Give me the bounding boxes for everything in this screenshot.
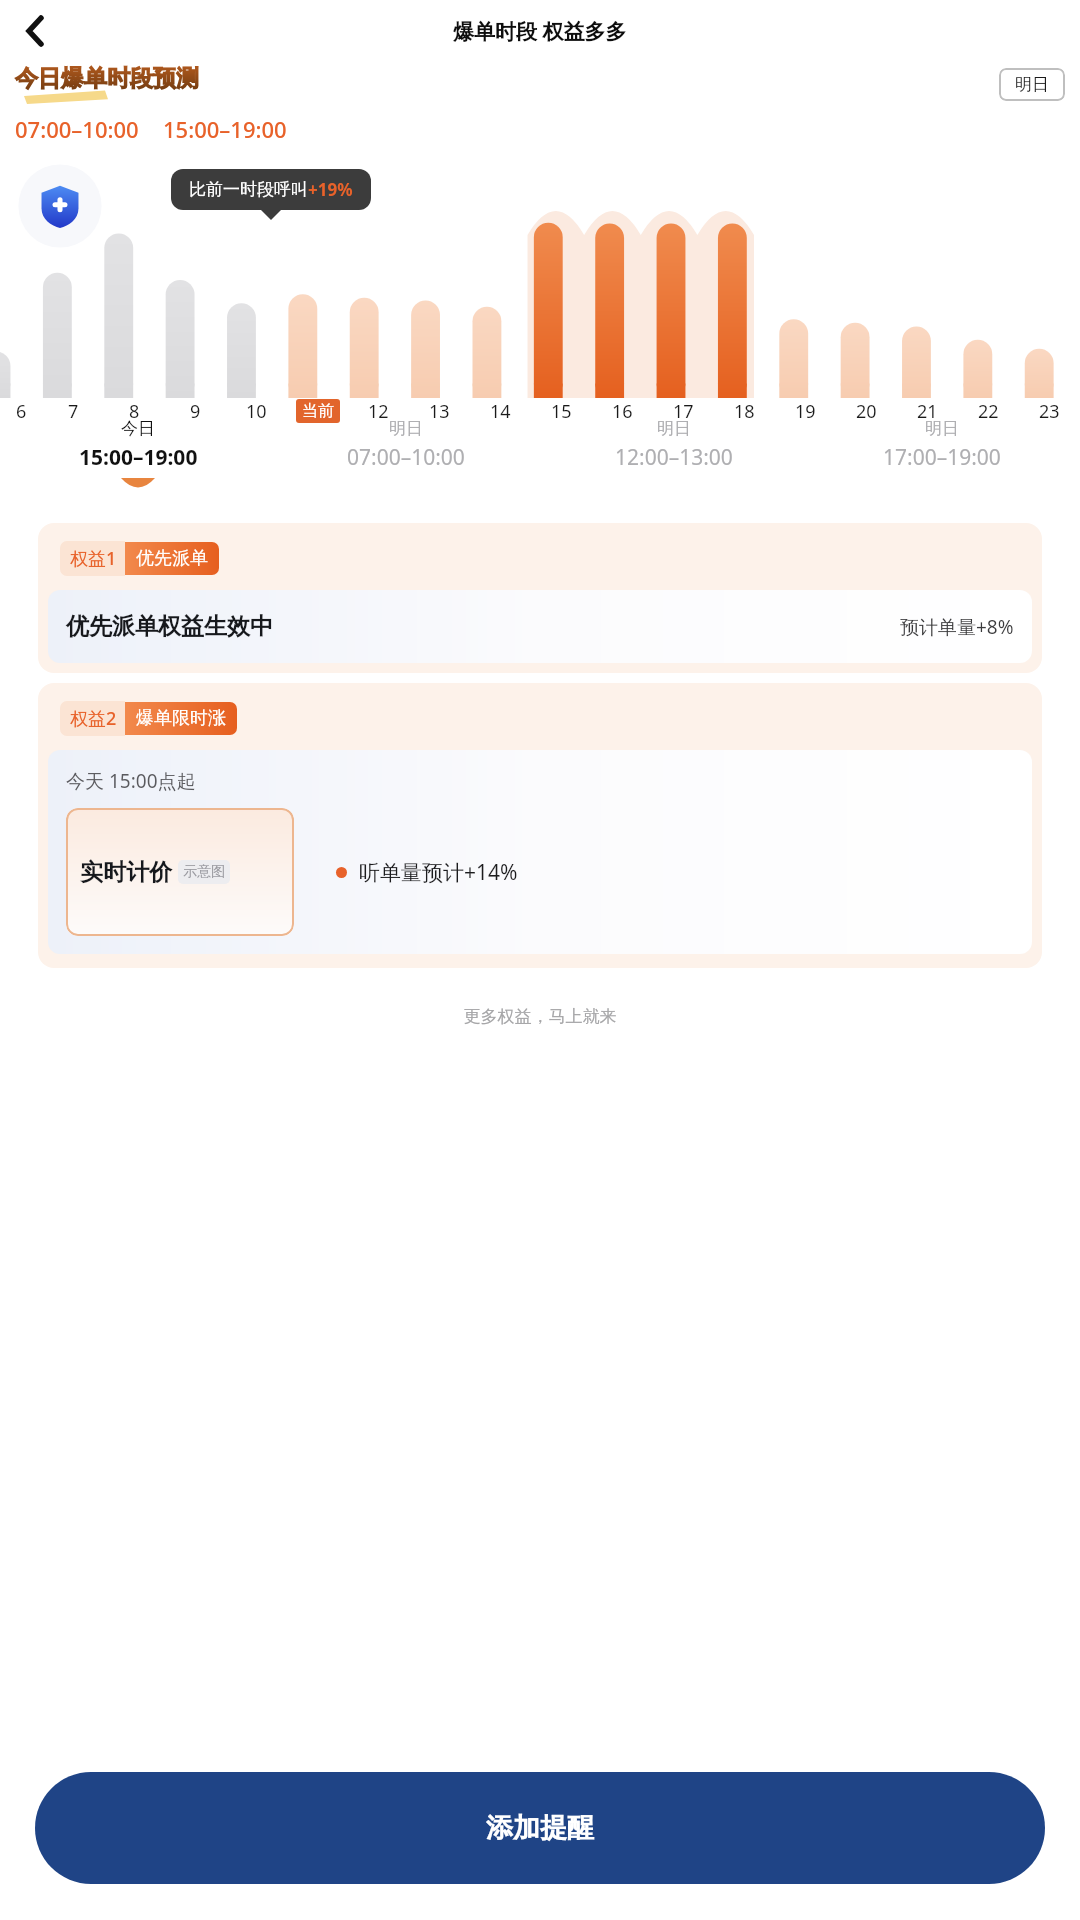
staticText: 权益1 bbox=[70, 546, 117, 571]
staticText: 爆单时段 权益多多 bbox=[453, 17, 627, 46]
staticText: 今天 15:00点起 bbox=[66, 768, 196, 794]
button[interactable]: 权益1 bbox=[38, 523, 1042, 673]
staticText: 15 bbox=[551, 399, 572, 424]
staticText: 17 bbox=[673, 399, 694, 424]
button[interactable]: 明日 bbox=[272, 412, 540, 493]
staticText: 15:00–19:00 bbox=[79, 443, 198, 472]
staticText: 示意图 bbox=[183, 863, 225, 881]
staticText: 22 bbox=[978, 399, 999, 424]
staticText: 17:00–19:00 bbox=[883, 443, 1001, 472]
staticText: 权益2 bbox=[70, 706, 117, 731]
staticText: 07:00–10:00 bbox=[347, 443, 465, 472]
button[interactable]: 明日 bbox=[999, 68, 1065, 101]
staticText: 明日 bbox=[389, 418, 423, 439]
staticText: 13 bbox=[429, 399, 450, 424]
staticText: 23 bbox=[1039, 399, 1060, 424]
staticText: 14 bbox=[490, 399, 511, 424]
staticText: 爆单限时涨 bbox=[136, 707, 226, 730]
staticText: 16 bbox=[612, 399, 633, 424]
staticText: 比前一时段呼叫 bbox=[189, 179, 308, 200]
staticText: 添加提醒 bbox=[486, 1811, 594, 1845]
staticText: 明日 bbox=[1015, 74, 1049, 95]
staticText: 18 bbox=[734, 399, 755, 424]
staticText: 9 bbox=[190, 399, 201, 424]
staticText: 听单量预计+14% bbox=[359, 858, 518, 887]
staticText: 明日 bbox=[925, 418, 959, 439]
staticText: 19 bbox=[795, 399, 816, 424]
staticText: 6 bbox=[16, 399, 27, 424]
staticText: +19% bbox=[308, 178, 353, 201]
staticText: 12 bbox=[368, 399, 389, 424]
button[interactable]: 添加提醒 bbox=[35, 1772, 1045, 1884]
button[interactable]: 今日 bbox=[4, 412, 272, 493]
button[interactable]: Back bbox=[14, 10, 56, 52]
staticText: 优先派单权益生效中 bbox=[66, 612, 273, 641]
button[interactable]: 权益2 bbox=[38, 683, 1042, 968]
staticText: 10 bbox=[246, 399, 267, 424]
staticText: 当前 bbox=[302, 401, 334, 421]
staticText: 8 bbox=[129, 399, 140, 424]
staticText: 预计单量+8% bbox=[900, 614, 1014, 640]
staticText: 更多权益，马上就来 bbox=[0, 1006, 1080, 1027]
staticText: 07:00–10:00 bbox=[15, 114, 139, 144]
staticText: 今日 bbox=[121, 418, 155, 439]
button[interactable]: 明日 bbox=[808, 412, 1076, 493]
staticText: 20 bbox=[856, 399, 877, 424]
staticText: 15:00–19:00 bbox=[163, 114, 287, 144]
staticText: 明日 bbox=[657, 418, 691, 439]
staticText: 21 bbox=[917, 399, 938, 424]
staticText: 12:00–13:00 bbox=[615, 443, 733, 472]
staticText: 实时计价 bbox=[80, 858, 172, 887]
button[interactable]: 明日 bbox=[540, 412, 808, 493]
staticText: 优先派单 bbox=[136, 547, 208, 570]
staticText: 7 bbox=[68, 399, 79, 424]
staticText: 今日爆单时段预测 bbox=[15, 64, 199, 93]
